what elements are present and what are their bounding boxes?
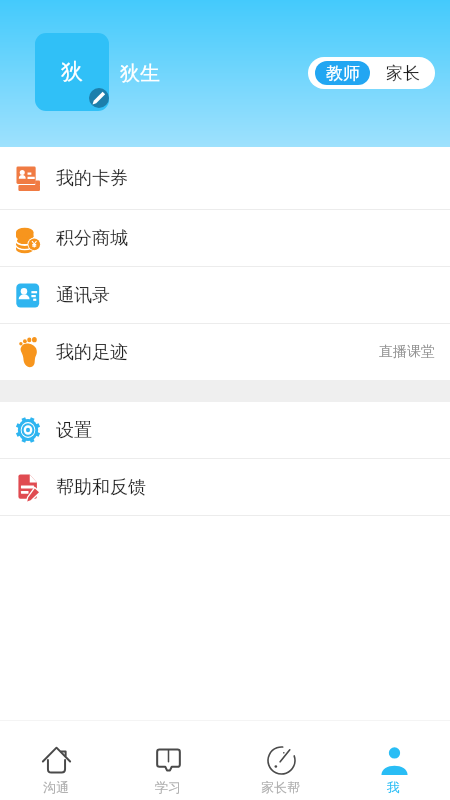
staticText: 教师 <box>326 63 360 84</box>
button[interactable]: 帮助和反馈 <box>0 459 450 515</box>
button[interactable]: 我的足迹 <box>0 324 450 380</box>
button[interactable]: 教师 <box>315 61 370 85</box>
button[interactable]: 家长 <box>370 57 435 89</box>
staticText: 通讯录 <box>56 284 110 307</box>
staticText: 直播课堂 <box>379 343 435 361</box>
button[interactable]: 我的卡券 <box>0 147 450 209</box>
staticText: 狄生 <box>120 61 160 86</box>
staticText: 家长 <box>386 63 420 84</box>
button[interactable]: 设置 <box>0 402 450 458</box>
staticText: 我的足迹 <box>56 341 128 364</box>
staticText: 积分商城 <box>56 227 128 250</box>
staticText: 我的卡券 <box>56 167 128 190</box>
button[interactable]: 积分商城 <box>0 210 450 266</box>
button[interactable]: 狄 <box>35 33 109 111</box>
staticText: 狄 <box>61 58 83 86</box>
button[interactable]: Edit avatar <box>89 88 109 108</box>
staticText: 帮助和反馈 <box>56 476 146 499</box>
button[interactable]: 家长帮 <box>224 721 337 800</box>
staticText: 沟通 <box>43 779 69 795</box>
button[interactable]: 沟通 <box>0 721 112 800</box>
button[interactable]: 我 <box>337 721 450 800</box>
staticText: 家长帮 <box>261 779 300 795</box>
staticText: 设置 <box>56 419 92 442</box>
button[interactable]: 学习 <box>112 721 224 800</box>
button[interactable]: 通讯录 <box>0 267 450 323</box>
staticText: 学习 <box>155 779 181 795</box>
staticText: 我 <box>387 779 400 795</box>
